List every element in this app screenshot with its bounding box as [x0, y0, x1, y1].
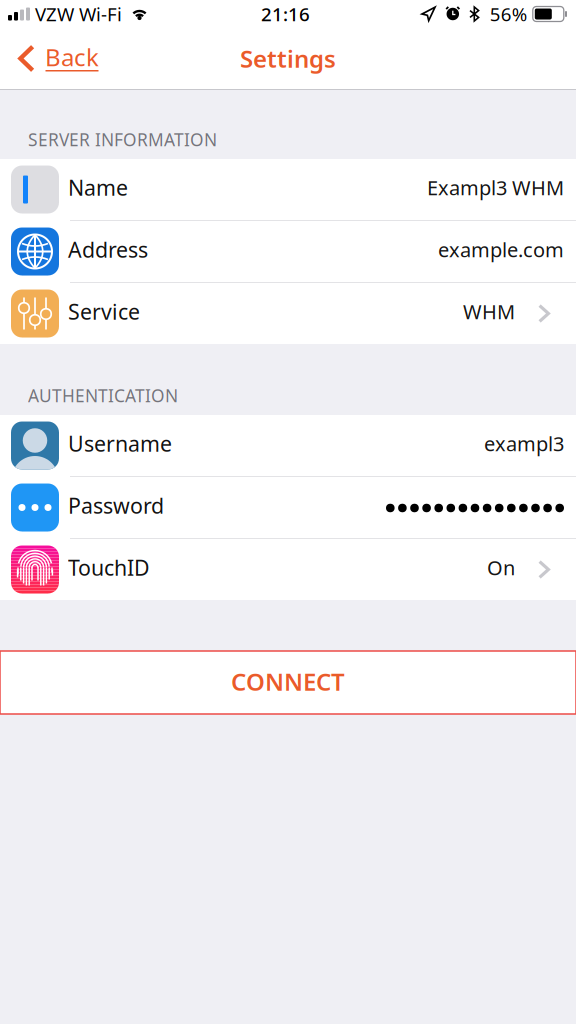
staticText: VZW Wi-Fi	[35, 2, 122, 26]
staticText: 21:16	[261, 2, 310, 26]
staticText: Username	[68, 429, 172, 458]
staticText: 56%	[490, 2, 528, 26]
staticText: example.com	[438, 236, 564, 263]
staticText: Settings	[240, 43, 336, 74]
button[interactable]: Name	[0, 159, 576, 220]
staticText: Name	[68, 173, 128, 202]
staticText: WHM	[463, 298, 515, 325]
button[interactable]: Back	[0, 28, 114, 89]
staticText: Service	[68, 297, 140, 326]
staticText: exampl3	[484, 430, 564, 457]
staticText: Back	[45, 41, 99, 73]
button[interactable]: CONNECT	[0, 651, 576, 714]
button[interactable]: Password	[0, 477, 576, 538]
button[interactable]: Service	[0, 283, 576, 344]
button[interactable]: TouchID	[0, 539, 576, 600]
staticText: CONNECT	[231, 666, 345, 697]
staticText: TouchID	[68, 553, 150, 582]
staticText: On	[487, 554, 515, 581]
button[interactable]: Address	[0, 221, 576, 282]
staticText: AUTHENTICATION	[28, 384, 178, 407]
button[interactable]: Username	[0, 415, 576, 476]
staticText: Address	[68, 235, 148, 264]
staticText: Exampl3 WHM	[427, 174, 564, 201]
staticText: SERVER INFORMATION	[28, 128, 217, 151]
staticText: Password	[68, 491, 164, 520]
